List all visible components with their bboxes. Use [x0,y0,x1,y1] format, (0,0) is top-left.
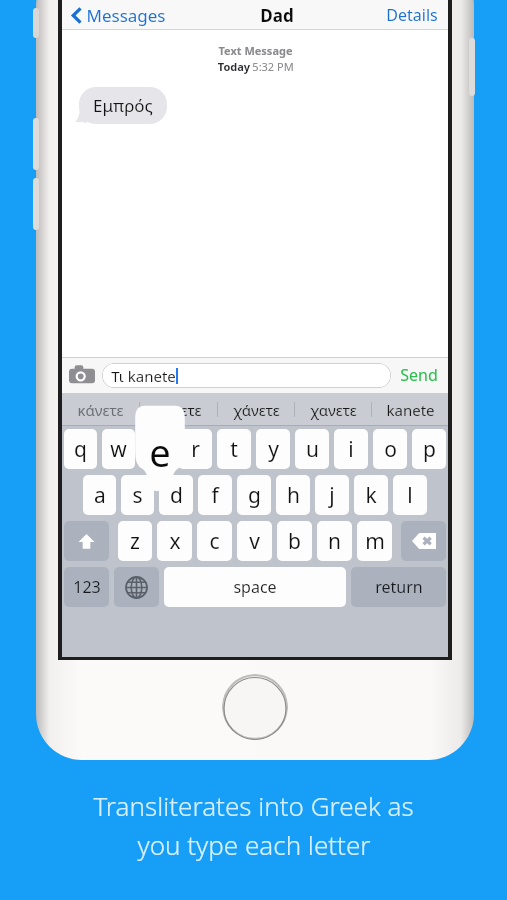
staticText: kanete [386,400,435,420]
button[interactable]: l [393,475,427,515]
button[interactable]: κάνετε [62,393,139,426]
staticText: f [211,481,219,510]
button[interactable]: κανετε [140,393,217,426]
staticText: r [191,435,200,464]
button[interactable]: q [64,429,97,469]
staticText: you type each letter [137,827,371,862]
button[interactable]: r [178,429,212,469]
button[interactable]: j [315,475,349,515]
staticText: e [149,426,171,478]
staticText: w [110,435,127,464]
staticText: d [170,481,183,510]
button[interactable]: χάνετε [218,393,294,426]
staticText: b [288,527,301,556]
staticText: g [248,481,261,510]
staticText: z [130,527,140,556]
button[interactable]: Details [384,2,440,28]
button[interactable]: y [256,429,290,469]
button[interactable]: u [295,429,329,469]
button[interactable]: g [237,475,271,515]
staticText: 5:32 PM [252,59,294,74]
button[interactable]: w [102,429,135,469]
staticText: q [74,435,87,464]
button[interactable]: d [159,475,193,515]
button[interactable]: b [277,521,312,561]
staticText: Τι kanete [111,366,176,386]
staticText: κανετε [155,400,202,420]
staticText: Today [216,59,252,74]
staticText: i [348,435,354,464]
staticText: χανετε [310,400,357,420]
button[interactable]: Shift [64,521,109,561]
staticText: l [407,481,413,510]
staticText: Messages [86,4,166,27]
button[interactable]: Camera [69,364,95,386]
staticText: p [423,435,436,464]
button[interactable]: c [197,521,232,561]
staticText: u [306,435,319,464]
button[interactable]: z [118,521,152,561]
staticText: y [268,435,279,464]
button[interactable]: s [121,475,154,515]
staticText: h [287,481,300,510]
button[interactable]: n [317,521,352,561]
staticText: χάνετε [233,400,280,420]
button[interactable]: kanete [372,393,448,426]
staticText: return [375,576,423,598]
button[interactable]: i [334,429,368,469]
button[interactable]: return [351,567,446,607]
button[interactable]: v [237,521,272,561]
button[interactable]: k [354,475,388,515]
button[interactable]: 123 [64,567,109,607]
button[interactable]: Messages [70,2,168,29]
button[interactable]: f [198,475,232,515]
staticText: 123 [73,576,101,598]
staticText: c [209,527,220,556]
button[interactable]: χανετε [295,393,371,426]
button[interactable]: Change keyboard [114,567,159,607]
staticText: e [151,435,163,464]
staticText: j [329,481,335,510]
button[interactable]: h [276,475,310,515]
button[interactable]: Backspace [401,521,446,561]
button[interactable]: x [157,521,192,561]
staticText: Text Message [218,43,293,58]
button[interactable]: e [140,429,173,469]
button[interactable]: Εμπρός [79,87,167,124]
staticText: m [365,527,385,556]
button[interactable]: Send [397,360,441,390]
staticText: t [230,435,238,464]
staticText: a [94,481,106,510]
staticText: κάνετε [77,400,124,420]
staticText: Transliterates into Greek as [93,788,414,823]
staticText: v [249,527,260,556]
staticText: Dad [260,4,294,27]
button[interactable]: p [412,429,446,469]
button[interactable]: o [373,429,407,469]
button[interactable]: Τι kanete [102,363,391,388]
staticText: Details [386,4,438,26]
staticText: o [384,435,397,464]
staticText: Εμπρός [93,94,153,117]
button[interactable]: space [164,567,346,607]
staticText: space [233,576,277,598]
button[interactable]: m [357,521,392,561]
button[interactable]: Home [222,674,288,740]
staticText: Send [400,364,438,386]
staticText: k [365,481,377,510]
staticText: x [169,527,181,556]
button[interactable]: a [83,475,116,515]
button[interactable]: t [217,429,251,469]
staticText: s [132,481,143,510]
staticText: n [328,527,341,556]
